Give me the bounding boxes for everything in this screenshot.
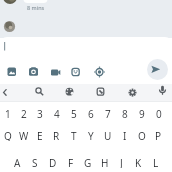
button[interactable] <box>70 66 82 78</box>
button[interactable] <box>33 87 44 98</box>
button[interactable]: 7 <box>99 107 116 119</box>
button[interactable]: E <box>32 129 48 141</box>
button[interactable] <box>50 66 62 78</box>
staticText: W <box>19 129 29 141</box>
button[interactable]: U <box>99 129 116 141</box>
button[interactable] <box>127 87 138 98</box>
staticText: E <box>37 129 43 141</box>
button[interactable]: 3 <box>32 107 48 119</box>
button[interactable]: O <box>133 129 150 141</box>
button[interactable]: F <box>62 156 79 168</box>
button[interactable] <box>95 87 106 98</box>
button[interactable]: H <box>96 156 113 168</box>
button[interactable]: L <box>147 156 164 168</box>
staticText: S <box>32 156 38 168</box>
button[interactable]: 5 <box>65 107 82 119</box>
staticText: 1 <box>5 107 11 119</box>
button[interactable]: 6 <box>82 107 99 119</box>
button[interactable]: W <box>16 129 32 141</box>
button[interactable]: 1 <box>0 107 16 119</box>
staticText: R <box>53 129 60 141</box>
button[interactable] <box>0 87 11 98</box>
staticText: K <box>135 156 142 168</box>
staticText: 8 mins <box>27 4 45 11</box>
button[interactable]: P <box>150 129 167 141</box>
staticText: F <box>68 156 74 168</box>
staticText: G <box>84 156 92 168</box>
staticText: 0 <box>156 107 162 119</box>
button[interactable]: Y <box>82 129 99 141</box>
button[interactable] <box>157 85 170 98</box>
button[interactable]: T <box>65 129 82 141</box>
staticText: H <box>101 156 109 168</box>
button[interactable]: 4 <box>48 107 65 119</box>
staticText: J <box>120 156 123 168</box>
staticText: P <box>155 129 162 141</box>
button[interactable]: 8 <box>116 107 133 119</box>
staticText: 2 <box>21 107 27 119</box>
button[interactable]: S <box>26 156 44 168</box>
button[interactable] <box>6 66 18 78</box>
staticText: L <box>153 156 159 168</box>
staticText: U <box>104 129 112 141</box>
staticText: 9 <box>139 107 145 119</box>
button[interactable]: K <box>130 156 147 168</box>
staticText: T <box>71 129 77 141</box>
button[interactable]: I <box>116 129 133 141</box>
button[interactable] <box>28 66 40 78</box>
staticText: A <box>14 156 21 168</box>
staticText: Q <box>4 129 12 141</box>
button[interactable]: A <box>8 156 26 168</box>
button[interactable]: J <box>113 156 130 168</box>
staticText: 8 <box>122 107 128 119</box>
button[interactable] <box>94 66 106 78</box>
staticText: 4 <box>54 107 60 119</box>
staticText: O <box>138 129 146 141</box>
button[interactable]: D <box>44 156 62 168</box>
button[interactable] <box>64 87 75 98</box>
staticText: 3 <box>37 107 43 119</box>
button[interactable]: 9 <box>133 107 150 119</box>
staticText: I <box>123 129 127 141</box>
button[interactable]: 0 <box>150 107 167 119</box>
button[interactable]: 2 <box>16 107 32 119</box>
staticText: Y <box>88 129 94 141</box>
button[interactable]: R <box>48 129 65 141</box>
staticText: D <box>49 156 57 168</box>
staticText: 5 <box>71 107 77 119</box>
button[interactable]: Q <box>0 129 16 141</box>
staticText: 6 <box>88 107 94 119</box>
staticText: 7 <box>105 107 111 119</box>
button[interactable]: G <box>79 156 96 168</box>
button[interactable] <box>147 59 168 80</box>
